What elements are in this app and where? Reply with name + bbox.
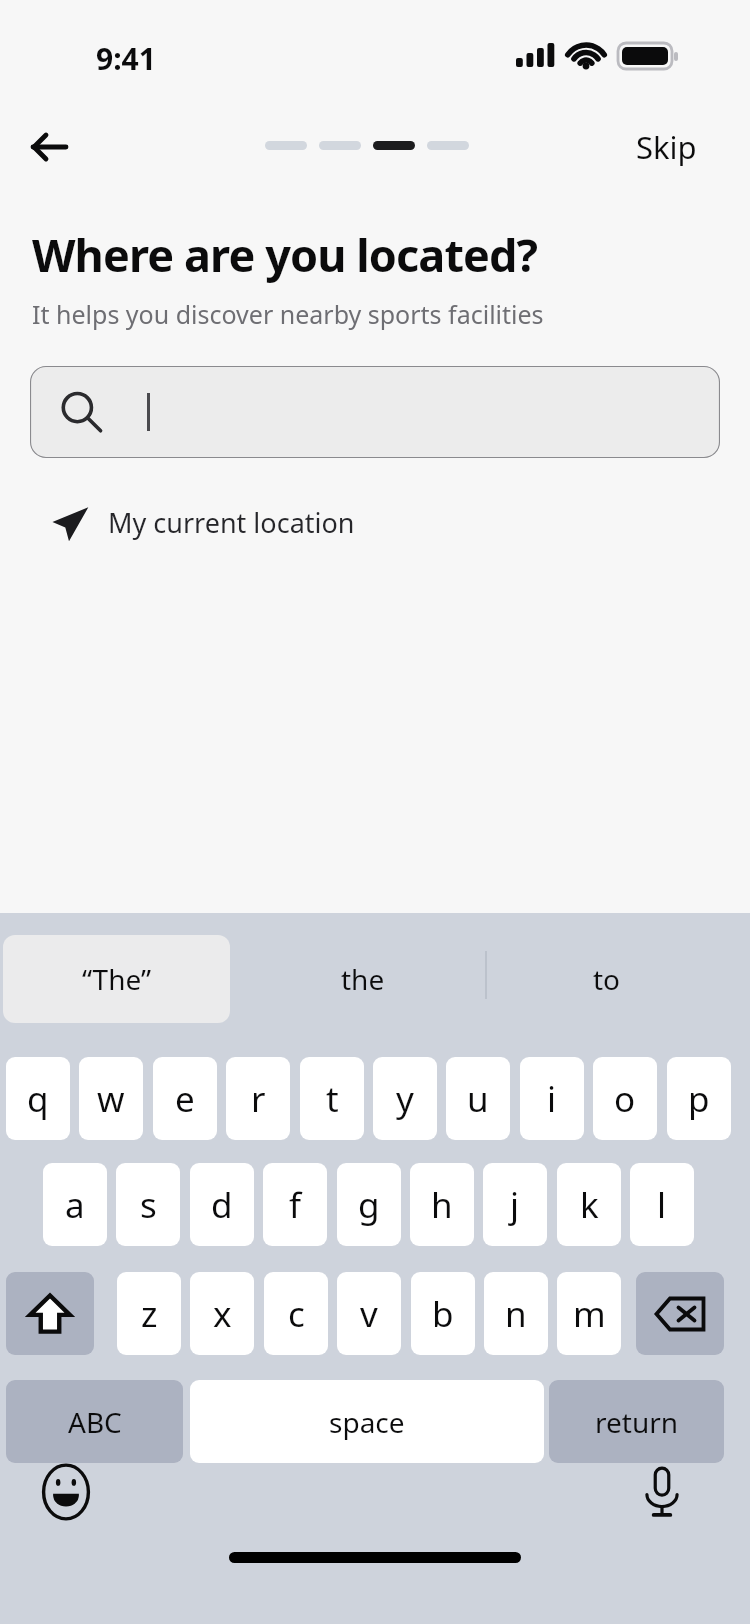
button[interactable]: v xyxy=(337,1272,401,1355)
button[interactable]: the xyxy=(245,935,480,1023)
button[interactable]: u xyxy=(446,1057,510,1140)
staticText: u xyxy=(467,1075,489,1123)
button[interactable]: k xyxy=(557,1163,621,1246)
button[interactable]: Skip xyxy=(608,118,724,176)
button[interactable]: f xyxy=(263,1163,327,1246)
staticText: l xyxy=(657,1181,667,1229)
staticText: w xyxy=(97,1075,125,1123)
button[interactable]: Voice input xyxy=(632,1462,692,1522)
staticText: n xyxy=(505,1290,527,1338)
staticText: return xyxy=(595,1403,679,1441)
button[interactable]: space xyxy=(190,1380,544,1463)
staticText: m xyxy=(573,1290,606,1338)
staticText: d xyxy=(211,1181,233,1229)
staticText: b xyxy=(432,1290,454,1338)
button[interactable]: z xyxy=(117,1272,181,1355)
button[interactable]: d xyxy=(190,1163,254,1246)
button[interactable]: c xyxy=(264,1272,328,1355)
staticText: Skip xyxy=(636,126,697,168)
staticText: o xyxy=(614,1075,636,1123)
staticText: It helps you discover nearby sports faci… xyxy=(32,297,544,331)
button[interactable]: h xyxy=(410,1163,474,1246)
staticText: q xyxy=(27,1075,49,1123)
staticText: a xyxy=(65,1181,85,1229)
staticText: y xyxy=(396,1075,414,1123)
staticText: j xyxy=(510,1181,520,1229)
staticText: ABC xyxy=(68,1403,122,1441)
button[interactable]: m xyxy=(557,1272,621,1355)
button[interactable]: ABC xyxy=(6,1380,183,1463)
button[interactable]: Backspace xyxy=(636,1272,724,1355)
button[interactable]: b xyxy=(411,1272,475,1355)
staticText: e xyxy=(175,1075,195,1123)
button[interactable]: w xyxy=(79,1057,143,1140)
staticText: r xyxy=(251,1075,266,1123)
button[interactable] xyxy=(30,366,720,458)
button[interactable]: j xyxy=(483,1163,547,1246)
staticText: k xyxy=(580,1181,599,1229)
staticText: My current location xyxy=(108,504,355,541)
button[interactable]: return xyxy=(549,1380,724,1463)
button[interactable]: y xyxy=(373,1057,437,1140)
staticText: v xyxy=(360,1290,378,1338)
button[interactable]: Back xyxy=(20,118,78,176)
button[interactable]: Shift xyxy=(6,1272,94,1355)
button[interactable]: x xyxy=(190,1272,254,1355)
staticText: c xyxy=(288,1290,305,1338)
staticText: s xyxy=(140,1181,157,1229)
staticText: space xyxy=(329,1403,405,1441)
button[interactable]: “The” xyxy=(3,935,230,1023)
button[interactable]: n xyxy=(484,1272,548,1355)
button[interactable]: q xyxy=(6,1057,70,1140)
button[interactable]: i xyxy=(520,1057,584,1140)
staticText: the xyxy=(341,960,385,998)
button[interactable]: g xyxy=(337,1163,401,1246)
staticText: f xyxy=(289,1181,302,1229)
staticText: to xyxy=(593,960,621,998)
button[interactable]: e xyxy=(153,1057,217,1140)
button[interactable]: Emoji keyboard xyxy=(36,1462,96,1522)
staticText: g xyxy=(358,1181,380,1229)
staticText: t xyxy=(326,1075,339,1123)
staticText: h xyxy=(431,1181,453,1229)
button[interactable]: My current location xyxy=(46,492,386,552)
button[interactable]: t xyxy=(300,1057,364,1140)
button[interactable]: l xyxy=(630,1163,694,1246)
staticText: p xyxy=(688,1075,710,1123)
staticText: z xyxy=(141,1290,158,1338)
staticText: x xyxy=(213,1290,232,1338)
button[interactable]: o xyxy=(593,1057,657,1140)
staticText: “The” xyxy=(82,960,152,998)
button[interactable]: p xyxy=(667,1057,731,1140)
button[interactable]: s xyxy=(116,1163,180,1246)
staticText: Where are you located? xyxy=(32,224,538,285)
staticText: i xyxy=(547,1075,557,1123)
button[interactable]: r xyxy=(226,1057,290,1140)
staticText: 9:41 xyxy=(96,38,156,79)
button[interactable]: to xyxy=(492,935,722,1023)
button[interactable]: a xyxy=(43,1163,107,1246)
